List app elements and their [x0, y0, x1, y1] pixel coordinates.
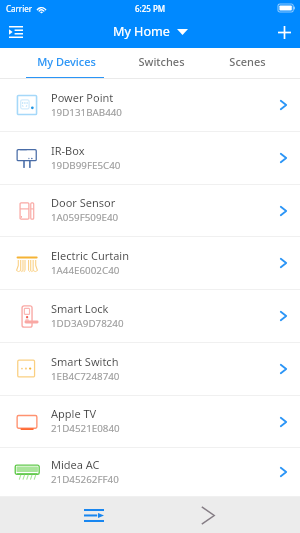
button[interactable]: Show list [80, 501, 108, 529]
staticText: Switches [138, 54, 185, 69]
staticText: 1A059F509E40 [51, 211, 119, 224]
button[interactable]: Switches [133, 48, 188, 79]
staticText: Carrier [6, 3, 33, 14]
staticText: My Devices [37, 54, 96, 69]
staticText: 1A44E6002C40 [51, 264, 120, 277]
staticText: Smart Lock [51, 301, 109, 316]
button[interactable]: Add device [268, 16, 300, 48]
staticText: IR-Box [51, 143, 85, 158]
staticText: Door Sensor [51, 195, 116, 210]
button[interactable]: Electric Curtain [0, 237, 300, 290]
button[interactable]: Door Sensor [0, 185, 300, 237]
staticText: Power Point [51, 90, 114, 105]
button[interactable]: Apple TV [0, 396, 300, 448]
staticText: Electric Curtain [51, 248, 130, 263]
button[interactable]: Scenes [188, 48, 300, 79]
button[interactable]: IR-Box [0, 132, 300, 185]
staticText: 6:25 PM [135, 3, 166, 14]
staticText: 19DB99FE5C40 [51, 159, 121, 172]
staticText: 1DD3A9D78240 [51, 317, 124, 330]
button[interactable]: Smart Switch [0, 343, 300, 396]
button[interactable]: Menu [0, 16, 34, 48]
button[interactable]: Power Point [0, 79, 300, 132]
button[interactable]: My Devices [0, 48, 133, 79]
button[interactable]: Forward [194, 501, 222, 529]
staticText: Scenes [229, 54, 266, 69]
staticText: Smart Switch [51, 354, 119, 369]
staticText: 21D4521E0840 [51, 422, 120, 435]
staticText: Midea AC [51, 457, 100, 472]
staticText: 21D45262FF40 [51, 473, 119, 486]
button[interactable]: Smart Lock [0, 290, 300, 343]
staticText: 1EB4C7248740 [51, 370, 120, 383]
button[interactable]: My Home [113, 23, 188, 40]
staticText: 19D131BAB440 [51, 106, 122, 119]
staticText: Apple TV [51, 406, 97, 421]
staticText: My Home [113, 23, 170, 40]
button[interactable]: Midea AC [0, 448, 300, 497]
